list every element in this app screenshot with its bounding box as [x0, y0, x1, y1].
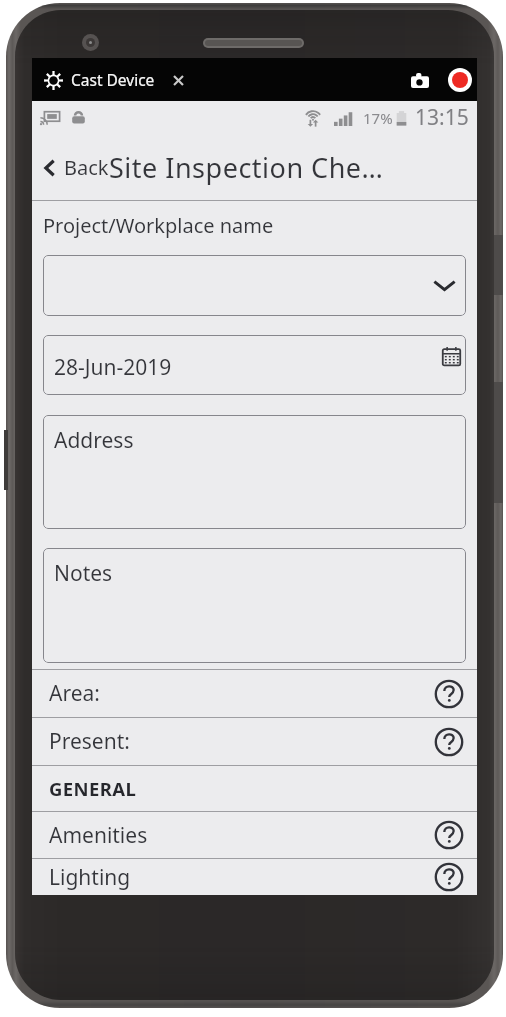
staticText: Cast Device [71, 69, 155, 90]
staticText: Site Inspection Che… [109, 149, 384, 186]
button[interactable]: Screenshot [407, 67, 433, 93]
button[interactable]: Settings [40, 67, 66, 93]
button[interactable]: Area: [32, 670, 477, 717]
button[interactable]: Present: [32, 718, 477, 765]
button[interactable]: Lighting [32, 859, 477, 895]
button[interactable] [43, 255, 466, 316]
staticText: Notes [54, 559, 113, 588]
staticText: 28-Jun-2019 [54, 353, 172, 382]
button[interactable]: Help for Amenities [433, 819, 465, 851]
button[interactable]: Help for Lighting [433, 861, 465, 893]
staticText: Present: [49, 727, 130, 756]
button[interactable]: Amenities [32, 812, 477, 858]
button[interactable]: GENERAL [32, 766, 477, 811]
button[interactable]: 28-Jun-2019 [43, 335, 466, 395]
staticText: Back [64, 154, 109, 181]
button[interactable]: Close [168, 70, 188, 90]
staticText: Lighting [49, 863, 131, 892]
button[interactable]: Help for Area: [433, 678, 465, 710]
button[interactable]: Address [43, 415, 466, 529]
staticText: 13:15 [415, 103, 469, 132]
staticText: Area: [49, 679, 100, 708]
button[interactable]: Notes [43, 548, 466, 663]
staticText: Amenities [49, 821, 148, 850]
button[interactable]: Back [32, 148, 109, 187]
staticText: Project/Workplace name [43, 212, 274, 239]
button[interactable]: Record [448, 68, 472, 92]
button[interactable]: Help for Present: [433, 726, 465, 758]
staticText: 17% [363, 108, 393, 128]
staticText: GENERAL [49, 776, 137, 801]
staticText: Address [54, 426, 134, 455]
